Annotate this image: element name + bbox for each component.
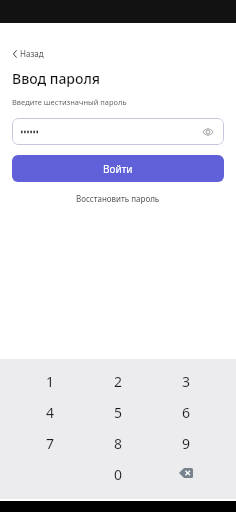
staticText: Назад xyxy=(20,48,44,59)
button[interactable]: Назад xyxy=(9,42,50,65)
staticText: 8 xyxy=(114,434,123,453)
button[interactable]: Показать пароль xyxy=(12,118,224,145)
button[interactable]: 2 xyxy=(84,366,152,397)
button[interactable]: Восстановить пароль xyxy=(70,190,166,207)
staticText: 6 xyxy=(182,403,191,422)
staticText: 7 xyxy=(46,434,55,453)
button[interactable]: 9 xyxy=(152,428,220,459)
button[interactable]: Удалить xyxy=(152,459,220,490)
button[interactable]: 6 xyxy=(152,397,220,428)
staticText: 2 xyxy=(114,372,123,391)
button[interactable]: 1 xyxy=(16,366,84,397)
button[interactable]: Показать пароль xyxy=(201,125,215,139)
staticText: 3 xyxy=(182,372,191,391)
staticText: 9 xyxy=(182,434,191,453)
staticText: Введите шестизначный пароль xyxy=(12,97,127,107)
button[interactable]: Войти xyxy=(12,155,224,182)
button[interactable]: 3 xyxy=(152,366,220,397)
staticText: Войти xyxy=(103,162,133,176)
button[interactable]: 8 xyxy=(84,428,152,459)
staticText: 4 xyxy=(46,403,55,422)
button[interactable]: 5 xyxy=(84,397,152,428)
button[interactable]: 7 xyxy=(16,428,84,459)
staticText: Ввод пароля xyxy=(12,69,100,88)
button[interactable]: 4 xyxy=(16,397,84,428)
button[interactable]: 0 xyxy=(84,459,152,490)
staticText: 1 xyxy=(46,372,55,391)
staticText: 5 xyxy=(114,403,123,422)
staticText: 0 xyxy=(114,465,123,484)
